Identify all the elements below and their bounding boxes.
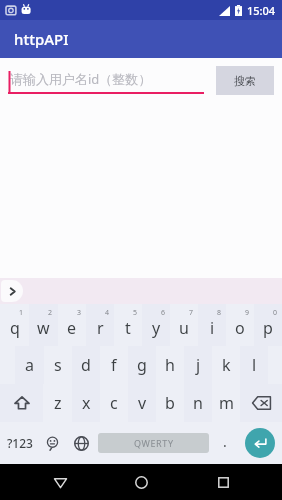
button[interactable]: m: [212, 384, 240, 422]
button[interactable]: j: [184, 346, 212, 384]
staticText: 请输入用户名id（整数）: [10, 70, 152, 88]
button[interactable]: Emoji: [39, 422, 66, 464]
staticText: r: [97, 317, 104, 339]
staticText: ?123: [7, 435, 33, 451]
button[interactable]: .: [211, 422, 238, 464]
staticText: u: [179, 317, 189, 339]
button[interactable]: x: [72, 384, 100, 422]
staticText: f: [111, 354, 117, 376]
staticText: z: [54, 392, 62, 414]
staticText: b: [165, 392, 175, 414]
button[interactable]: v: [128, 384, 156, 422]
staticText: w: [37, 317, 50, 339]
button[interactable]: 请输入用户名id（整数）: [8, 65, 204, 95]
staticText: o: [235, 317, 245, 339]
button[interactable]: Backspace: [240, 384, 282, 422]
button[interactable]: s: [44, 346, 72, 384]
staticText: 3: [77, 308, 82, 318]
staticText: 15:04: [247, 3, 276, 18]
staticText: a: [25, 354, 34, 376]
button[interactable]: y: [142, 304, 170, 346]
staticText: j: [196, 354, 201, 376]
staticText: t: [125, 317, 131, 339]
button[interactable]: Shift: [0, 384, 43, 422]
button[interactable]: QWERTY: [98, 433, 209, 453]
staticText: 搜索: [234, 74, 256, 88]
button[interactable]: h: [156, 346, 184, 384]
staticText: x: [82, 392, 91, 414]
staticText: l: [252, 354, 257, 376]
button[interactable]: a: [15, 346, 44, 384]
staticText: y: [152, 317, 161, 339]
button[interactable]: r: [86, 304, 114, 346]
button[interactable]: Expand suggestions: [1, 280, 23, 302]
staticText: 1: [19, 308, 24, 318]
button[interactable]: t: [114, 304, 142, 346]
staticText: 5: [133, 308, 138, 318]
button[interactable]: w: [29, 304, 58, 346]
button[interactable]: c: [100, 384, 128, 422]
button[interactable]: 搜索: [216, 66, 274, 95]
button[interactable]: l: [240, 346, 268, 384]
button[interactable]: d: [72, 346, 100, 384]
button[interactable]: Home: [119, 464, 163, 500]
staticText: p: [263, 317, 273, 339]
staticText: 9: [245, 308, 250, 318]
button[interactable]: q: [0, 304, 29, 346]
button[interactable]: Back: [38, 464, 82, 500]
staticText: .: [223, 432, 227, 451]
button[interactable]: i: [198, 304, 226, 346]
button[interactable]: b: [156, 384, 184, 422]
staticText: g: [137, 354, 147, 376]
staticText: s: [54, 354, 62, 376]
button[interactable]: z: [43, 384, 72, 422]
staticText: 7: [189, 308, 194, 318]
staticText: i: [210, 317, 215, 339]
button[interactable]: f: [100, 346, 128, 384]
button[interactable]: u: [170, 304, 198, 346]
button[interactable]: ?123: [0, 422, 39, 464]
button[interactable]: p: [254, 304, 282, 346]
staticText: e: [67, 317, 77, 339]
button[interactable]: Change keyboard language: [66, 422, 96, 464]
staticText: 8: [217, 308, 222, 318]
button[interactable]: k: [212, 346, 240, 384]
staticText: 6: [161, 308, 166, 318]
staticText: v: [138, 392, 147, 414]
staticText: h: [165, 354, 175, 376]
staticText: 2: [48, 308, 53, 318]
button[interactable]: n: [184, 384, 212, 422]
staticText: d: [81, 354, 91, 376]
staticText: c: [110, 392, 118, 414]
button[interactable]: g: [128, 346, 156, 384]
staticText: q: [10, 317, 20, 339]
staticText: QWERTY: [134, 437, 174, 449]
button[interactable]: Enter: [245, 428, 275, 458]
button[interactable]: o: [226, 304, 254, 346]
button[interactable]: e: [58, 304, 86, 346]
staticText: k: [222, 354, 231, 376]
staticText: n: [193, 392, 203, 414]
staticText: 0: [273, 308, 278, 318]
staticText: m: [219, 392, 234, 414]
button[interactable]: Recent apps: [201, 464, 245, 500]
staticText: httpAPI: [14, 29, 69, 49]
staticText: 4: [105, 308, 110, 318]
